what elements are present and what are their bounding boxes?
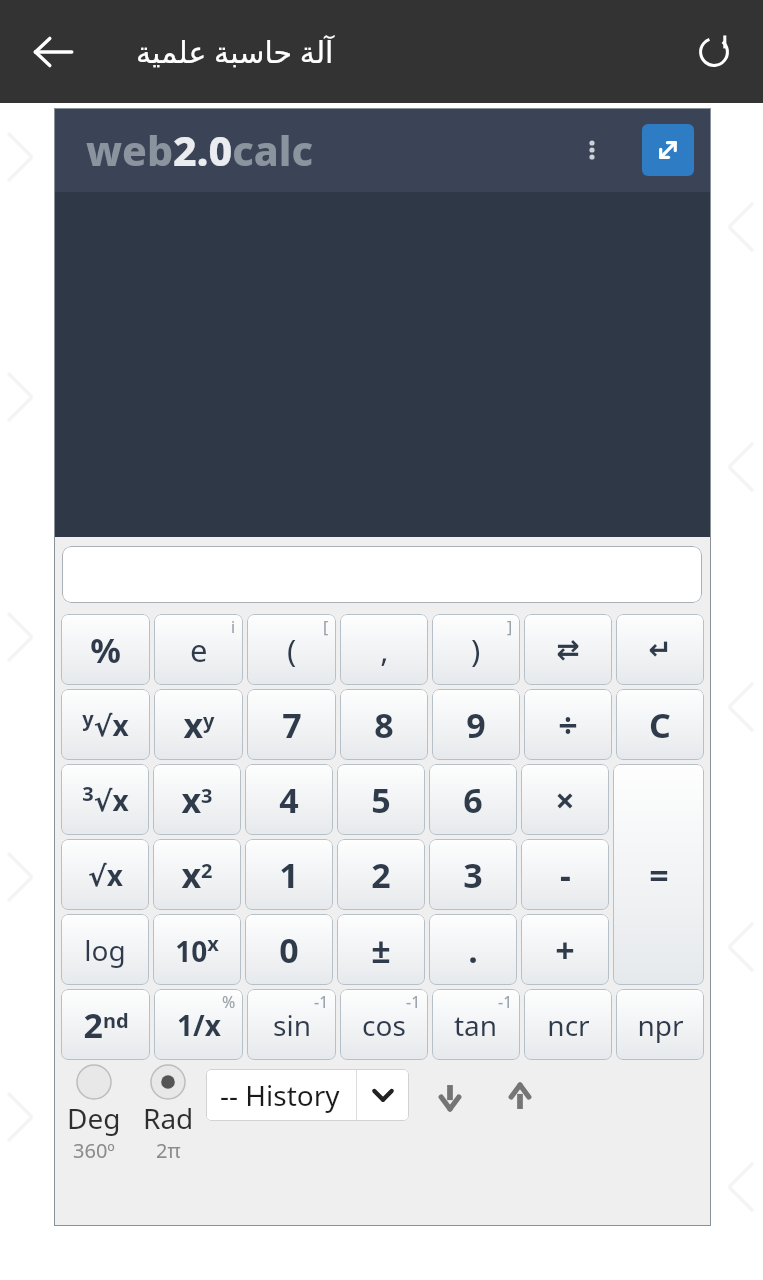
staticText: 360º [73, 1137, 115, 1164]
staticText: ↵ [648, 633, 672, 666]
button[interactable]: ± [337, 914, 425, 985]
staticText: 4 [279, 777, 299, 823]
staticText: ] [507, 616, 513, 638]
staticText: ± [371, 927, 391, 973]
staticText: 2 [371, 852, 391, 898]
staticText: -1 [406, 991, 421, 1013]
button[interactable]: -1 [432, 989, 520, 1060]
staticText: . [468, 927, 478, 973]
button[interactable]: ] [432, 614, 520, 685]
staticText: C [649, 702, 671, 748]
staticText: آلة حاسبة علمية [136, 31, 334, 72]
staticText: e [190, 629, 208, 671]
button[interactable]: , [340, 614, 428, 685]
button[interactable]: ⇄ [524, 614, 612, 685]
button[interactable]: % [61, 614, 150, 685]
button[interactable]: - [521, 839, 609, 910]
staticText: cos [362, 1006, 406, 1044]
button[interactable]: npr [616, 989, 704, 1060]
staticText: % [222, 991, 236, 1013]
staticText: 6 [463, 777, 483, 823]
staticText: [ [323, 616, 329, 638]
staticText: ÷ [558, 702, 578, 748]
staticText: ⇄ [556, 633, 580, 666]
staticText: 2π [156, 1137, 181, 1164]
staticText: % [90, 627, 121, 673]
staticText: 1 [279, 852, 299, 898]
staticText: npr [637, 1006, 684, 1044]
staticText: 0 [279, 927, 299, 973]
button[interactable]: 8 [340, 689, 428, 760]
button[interactable]: √x [61, 839, 149, 910]
staticText: × [555, 777, 575, 823]
staticText: √x [88, 856, 123, 894]
staticText: , [380, 629, 389, 671]
button[interactable]: Rad [136, 1065, 200, 1164]
staticText: ncr [547, 1006, 590, 1044]
button[interactable]: log [61, 914, 149, 985]
button[interactable]: + [521, 914, 609, 985]
button[interactable]: Deg [62, 1065, 126, 1164]
button[interactable]: x3 [153, 764, 241, 835]
button[interactable]: 2nd [61, 989, 150, 1060]
button[interactable]: ncr [524, 989, 612, 1060]
button[interactable]: 3√x [61, 764, 149, 835]
button[interactable]: More options [571, 129, 613, 171]
staticText: - [560, 852, 571, 898]
button[interactable]: . [429, 914, 517, 985]
button[interactable]: 1 [245, 839, 333, 910]
staticText: 7 [282, 702, 302, 748]
button[interactable]: 0 [245, 914, 333, 985]
staticText: Deg [67, 1099, 121, 1137]
staticText: x3 [181, 777, 213, 823]
button[interactable]: 2 [337, 839, 425, 910]
button[interactable]: Scroll up [497, 1074, 543, 1120]
button[interactable]: y√x [61, 689, 150, 760]
button[interactable]: C [616, 689, 704, 760]
staticText: 5 [371, 777, 391, 823]
button[interactable]: Refresh [683, 21, 745, 83]
button[interactable]: Fullscreen [642, 124, 694, 176]
staticText: 2nd [83, 1002, 129, 1048]
button[interactable]: 3 [429, 839, 517, 910]
staticText: sin [273, 1006, 311, 1044]
staticText: 10x [175, 930, 219, 970]
button[interactable]: 4 [245, 764, 333, 835]
staticText: 9 [466, 702, 486, 748]
button[interactable]: ↵ [616, 614, 704, 685]
button[interactable] [62, 546, 702, 603]
button[interactable]: ÷ [524, 689, 612, 760]
staticText: ) [471, 629, 481, 671]
staticText: web2.0calc [86, 122, 314, 178]
button[interactable]: × [521, 764, 609, 835]
button[interactable]: -1 [247, 989, 336, 1060]
staticText: Rad [143, 1099, 194, 1137]
button[interactable]: = [613, 764, 704, 985]
staticText: 8 [374, 702, 394, 748]
staticText: -1 [314, 991, 329, 1013]
button[interactable]: % [154, 989, 243, 1060]
button[interactable]: [ [247, 614, 336, 685]
button[interactable]: x2 [153, 839, 241, 910]
button[interactable]: 7 [247, 689, 336, 760]
staticText: tan [454, 1006, 498, 1044]
button[interactable]: i [154, 614, 243, 685]
button[interactable]: Back [20, 19, 86, 85]
staticText: -1 [498, 991, 513, 1013]
button[interactable]: -1 [340, 989, 428, 1060]
button[interactable]: 6 [429, 764, 517, 835]
button[interactable]: -- History [206, 1069, 409, 1121]
button[interactable]: Scroll down [427, 1074, 473, 1120]
staticText: log [84, 931, 126, 969]
staticText: = [649, 852, 669, 898]
staticText: 3√x [82, 780, 129, 819]
button[interactable]: 9 [432, 689, 520, 760]
button[interactable]: 5 [337, 764, 425, 835]
staticText: -- History [220, 1076, 340, 1114]
staticText: x2 [181, 852, 213, 898]
button[interactable]: 10x [153, 914, 241, 985]
staticText: i [231, 616, 236, 638]
button[interactable]: xy [154, 689, 243, 760]
staticText: xy [183, 702, 215, 748]
staticText: + [555, 927, 575, 973]
